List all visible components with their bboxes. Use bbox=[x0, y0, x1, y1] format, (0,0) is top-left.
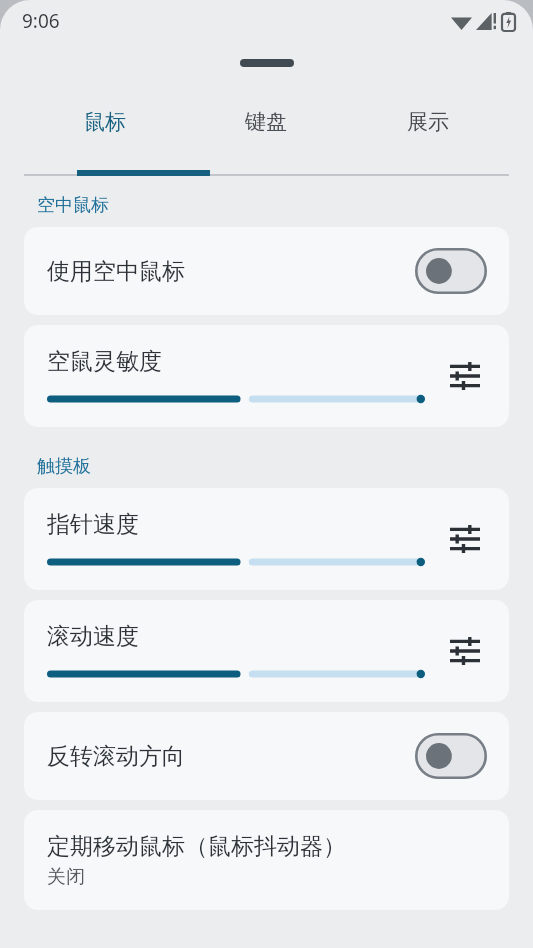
button[interactable]: 调节 bbox=[441, 515, 489, 563]
button[interactable]: 定期移动鼠标（鼠标抖动器） bbox=[24, 810, 509, 910]
button[interactable]: 调节 bbox=[441, 627, 489, 675]
staticText: 滚动速度 bbox=[47, 622, 139, 651]
button[interactable]: 键盘 bbox=[185, 84, 347, 176]
staticText: 9:06 bbox=[22, 8, 60, 34]
button[interactable]: 使用空中鼠标 bbox=[24, 227, 509, 315]
button[interactable]: 空鼠灵敏度 bbox=[24, 325, 509, 427]
staticText: 关闭 bbox=[47, 865, 85, 889]
staticText: 触摸板 bbox=[37, 455, 91, 478]
button[interactable]: 反转滚动方向 bbox=[24, 712, 509, 800]
button[interactable]: 指针速度 bbox=[47, 555, 425, 569]
button[interactable]: 滚动速度 bbox=[47, 667, 425, 681]
button[interactable]: 调节 bbox=[441, 352, 489, 400]
button[interactable]: 滚动速度 bbox=[24, 600, 509, 702]
staticText: 指针速度 bbox=[47, 510, 139, 539]
staticText: 展示 bbox=[407, 109, 449, 135]
staticText: 使用空中鼠标 bbox=[47, 257, 185, 286]
staticText: 键盘 bbox=[245, 109, 287, 135]
staticText: 反转滚动方向 bbox=[47, 742, 185, 771]
staticText: 定期移动鼠标（鼠标抖动器） bbox=[47, 832, 346, 861]
staticText: 空中鼠标 bbox=[37, 194, 109, 217]
button[interactable]: 空鼠灵敏度 bbox=[47, 392, 425, 406]
staticText: 空鼠灵敏度 bbox=[47, 347, 162, 376]
button[interactable]: 展示 bbox=[347, 84, 509, 176]
button[interactable]: 鼠标 bbox=[24, 84, 185, 176]
button[interactable]: 指针速度 bbox=[24, 488, 509, 590]
button[interactable]: 反转滚动方向 bbox=[415, 733, 487, 779]
button[interactable]: 使用空中鼠标 bbox=[415, 248, 487, 294]
staticText: 鼠标 bbox=[84, 109, 126, 135]
